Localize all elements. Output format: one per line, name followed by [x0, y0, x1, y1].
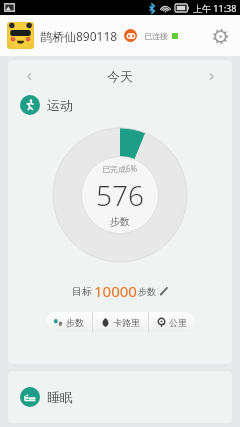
- staticText: 步数: [110, 215, 130, 228]
- staticText: 目标: [72, 285, 92, 298]
- button[interactable]: 睡眠: [8, 371, 232, 423]
- staticText: 步数: [138, 286, 156, 297]
- staticText: 已连接: [144, 31, 168, 41]
- staticText: 卡路里: [113, 317, 140, 328]
- button[interactable]: Device link: [124, 29, 137, 42]
- staticText: 上午 11:38: [193, 2, 237, 14]
- button[interactable]: 目标: [8, 281, 232, 301]
- button[interactable]: Next day: [200, 65, 222, 87]
- staticText: 今天: [40, 68, 200, 84]
- button[interactable]: 公里: [149, 312, 195, 332]
- staticText: 睡眠: [47, 389, 73, 405]
- button[interactable]: 步数: [46, 312, 92, 332]
- staticText: 10000: [94, 281, 137, 301]
- staticText: 576: [96, 176, 144, 214]
- staticText: 步数: [66, 317, 84, 328]
- button[interactable]: Settings: [207, 23, 233, 49]
- button[interactable]: 卡路里: [93, 312, 148, 332]
- staticText: 已完成6%: [102, 163, 138, 174]
- button[interactable]: Profile avatar: [7, 22, 34, 49]
- staticText: 运动: [47, 97, 73, 113]
- button[interactable]: Previous day: [18, 65, 40, 87]
- staticText: 鹊桥仙890118: [40, 28, 118, 44]
- staticText: 公里: [169, 317, 187, 328]
